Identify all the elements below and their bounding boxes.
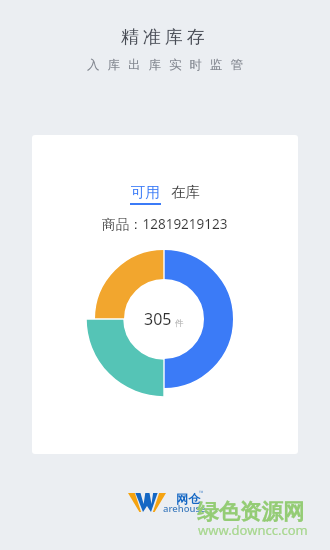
staticText: 在库 — [171, 183, 200, 201]
staticText: arehouse — [163, 502, 206, 515]
staticText: 入库出库实时监管 — [83, 57, 247, 73]
staticText: 精准库存 — [121, 26, 209, 49]
staticText: 商品：12819219123 — [102, 215, 228, 233]
other: 网仓 Warehouse logo — [128, 493, 166, 512]
staticText: 绿色资源网 — [197, 498, 305, 525]
staticText: 305 — [144, 308, 172, 330]
button[interactable]: 在库 — [171, 183, 200, 201]
staticText: 网仓 — [176, 491, 200, 506]
staticText: ™ — [199, 489, 204, 497]
staticText: www.downcc.com — [198, 521, 308, 539]
button[interactable]: 可用 — [130, 183, 161, 205]
staticText: 可用 — [131, 183, 160, 201]
staticText: 件 — [175, 318, 184, 329]
